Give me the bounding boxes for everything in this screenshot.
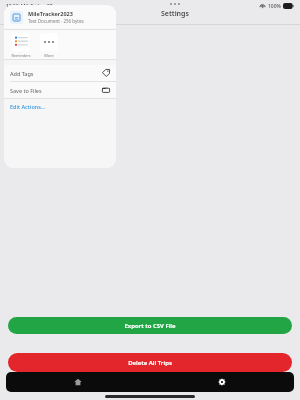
button[interactable]: Edit Actions... — [10, 99, 110, 114]
staticText: Export to CSV File — [124, 322, 176, 330]
button[interactable]: Delete All Trips — [8, 353, 292, 372]
button[interactable]: Home — [6, 372, 150, 392]
staticText: More — [44, 53, 54, 58]
staticText: Save to Files — [10, 87, 42, 94]
button[interactable]: Settings — [150, 372, 294, 392]
staticText: Reminders — [11, 53, 31, 58]
button[interactable]: More — [38, 33, 59, 58]
button[interactable]: MileTracker2023 — [10, 5, 110, 29]
staticText: Add Tags — [10, 70, 34, 77]
staticText: MileTracker2023 — [28, 10, 73, 17]
staticText: Text Document · 256 bytes — [28, 18, 84, 24]
button[interactable]: Reminders — [10, 33, 31, 58]
staticText: Edit Actions... — [10, 103, 46, 110]
button[interactable]: Add Tags — [10, 65, 110, 81]
button[interactable]: Save to Files — [10, 82, 110, 98]
staticText: 100% — [268, 3, 281, 10]
staticText: Delete All Trips — [128, 359, 172, 367]
staticText: 12:55 AM Fri Jan 27 — [6, 3, 53, 10]
staticText: Settings — [161, 9, 189, 19]
button[interactable]: Export to CSV File — [8, 317, 292, 334]
